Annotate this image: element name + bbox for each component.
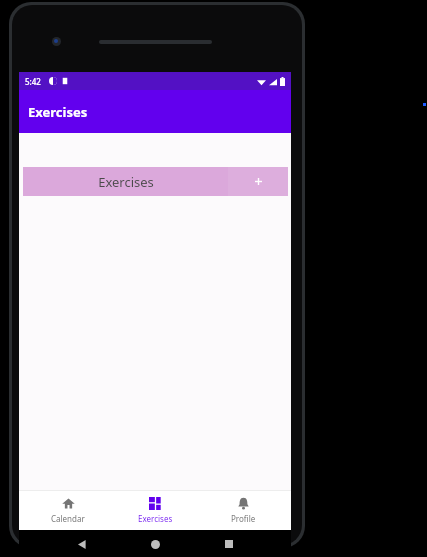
button[interactable]: Exercises <box>116 490 194 530</box>
staticText: Profile <box>231 513 256 524</box>
button[interactable]: Profile <box>204 490 282 530</box>
staticText: Calendar <box>51 513 85 524</box>
button[interactable]: Exercises <box>23 167 288 196</box>
button[interactable]: Home <box>144 533 166 555</box>
button[interactable]: Recents <box>218 533 240 555</box>
staticText: Exercises <box>28 103 88 121</box>
staticText: 5:42 <box>25 76 41 87</box>
button[interactable]: Calendar <box>29 490 107 530</box>
staticText: Exercises <box>138 513 173 524</box>
staticText: Exercises <box>98 173 154 191</box>
button[interactable]: Back <box>71 533 93 555</box>
button[interactable]: Add exercise <box>228 167 288 196</box>
